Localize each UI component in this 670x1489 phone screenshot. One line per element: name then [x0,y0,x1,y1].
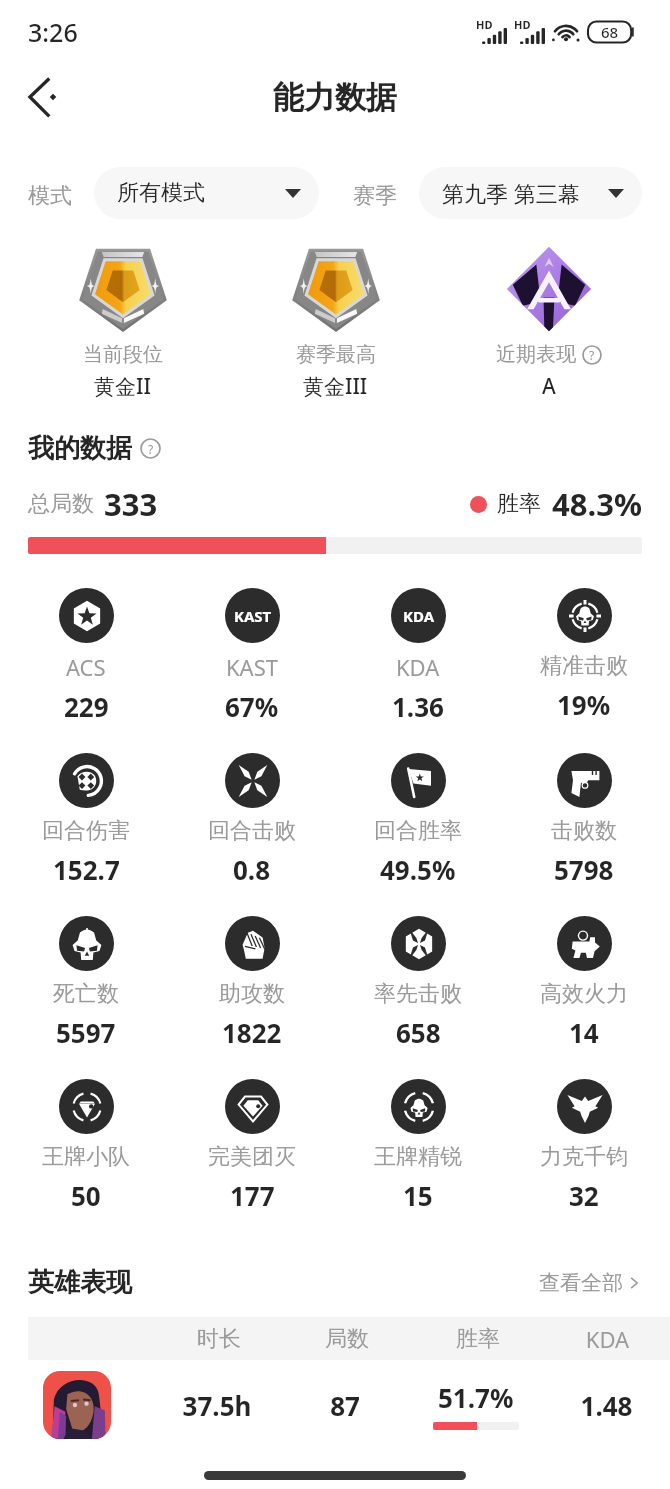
staticText: 率先击败 [374,980,462,1008]
staticText: 37.5h [153,1388,281,1423]
staticText: 回合击败 [208,817,296,845]
button[interactable]: 助攻数 [172,916,332,1050]
staticText: 击败数 [551,817,617,845]
staticText: 333 [104,483,158,525]
staticText: 68 [601,22,619,42]
staticText: 总局数 [28,490,94,518]
staticText: KAST [226,652,278,682]
staticText: 胜率 [411,1325,545,1353]
button[interactable]: 力克千钧 [504,1079,664,1213]
button[interactable]: 所有模式 [94,167,319,219]
staticText: 死亡数 [53,980,119,1008]
staticText: ACS [66,652,106,682]
staticText: HD [476,17,493,32]
staticText: KDA [545,1324,670,1354]
staticText: 完美团灭 [208,1143,296,1171]
staticText: 局数 [283,1325,411,1353]
button[interactable]: KDA [338,588,498,724]
staticText: 力克千钧 [540,1143,628,1171]
button[interactable]: 王牌精锐 [338,1079,498,1213]
staticText: 回合伤害 [42,817,130,845]
staticText: 0.8 [233,852,271,887]
button[interactable]: 回合伤害 [6,753,166,887]
staticText: 229 [64,689,109,724]
staticText: 近期表现 [496,342,576,367]
button[interactable]: 完美团灭 [172,1079,332,1213]
staticText: 高效火力 [540,980,628,1008]
staticText: HD [514,17,531,32]
staticText: 19% [557,687,611,722]
staticText: 49.5% [380,852,456,887]
button[interactable]: 查看全部 [539,1270,642,1296]
staticText: 15 [403,1178,433,1213]
button[interactable]: 击败数 [504,753,664,887]
staticText: 67% [225,689,279,724]
staticText: ? [589,347,595,363]
staticText: ? [148,441,154,457]
staticText: 黄金III [303,372,368,401]
staticText: 模式 [28,182,72,210]
button[interactable]: Back [16,69,72,125]
staticText: 48.3% [552,483,642,525]
staticText: 1.36 [392,689,444,724]
staticText: KDA [403,606,435,626]
button[interactable]: 死亡数 [6,916,166,1050]
staticText: 时长 [155,1325,283,1353]
staticText: 赛季 [353,182,397,210]
staticText: 王牌精锐 [374,1143,462,1171]
button[interactable]: 回合胜率 [338,753,498,887]
staticText: 14 [569,1015,599,1050]
staticText: 5798 [554,852,614,887]
button[interactable]: KAST [172,588,332,724]
staticText: 助攻数 [219,980,285,1008]
staticText: 我的数据 [28,432,132,465]
staticText: 1.48 [543,1388,670,1423]
staticText: 5597 [56,1015,116,1050]
staticText: 658 [396,1015,441,1050]
staticText: 3:26 [28,15,78,49]
button[interactable]: 第九季 第三幕 [419,167,642,219]
staticText: 152.7 [53,852,120,887]
staticText: 第九季 第三幕 [442,178,580,208]
button[interactable]: 高效火力 [504,916,664,1050]
staticText: 当前段位 [83,342,163,367]
staticText: 黄金II [94,372,151,401]
staticText: 1822 [222,1015,282,1050]
staticText: 英雄表现 [28,1266,132,1299]
staticText: 精准击败 [540,652,628,680]
staticText: 胜率 [497,490,541,518]
staticText: KAST [234,606,272,626]
staticText: 50 [71,1178,101,1213]
staticText: 回合胜率 [374,817,462,845]
button[interactable]: 王牌小队 [6,1079,166,1213]
staticText: 查看全部 [539,1270,623,1296]
button[interactable]: 率先击败 [338,916,498,1050]
button[interactable]: 精准击败 [504,588,664,722]
staticText: A [542,372,556,401]
staticText: 赛季最高 [296,342,376,367]
button[interactable]: 回合击败 [172,753,332,887]
staticText: 王牌小队 [42,1143,130,1171]
staticText: KDA [396,652,440,682]
staticText: 所有模式 [117,179,205,207]
button[interactable]: ACS [6,588,166,724]
staticText: 87 [281,1388,409,1423]
staticText: 32 [569,1178,599,1213]
staticText: 51.7% [438,1380,514,1415]
staticText: 177 [230,1178,275,1213]
staticText: 能力数据 [273,78,397,117]
button[interactable]: Agent Reyna [43,1371,111,1439]
